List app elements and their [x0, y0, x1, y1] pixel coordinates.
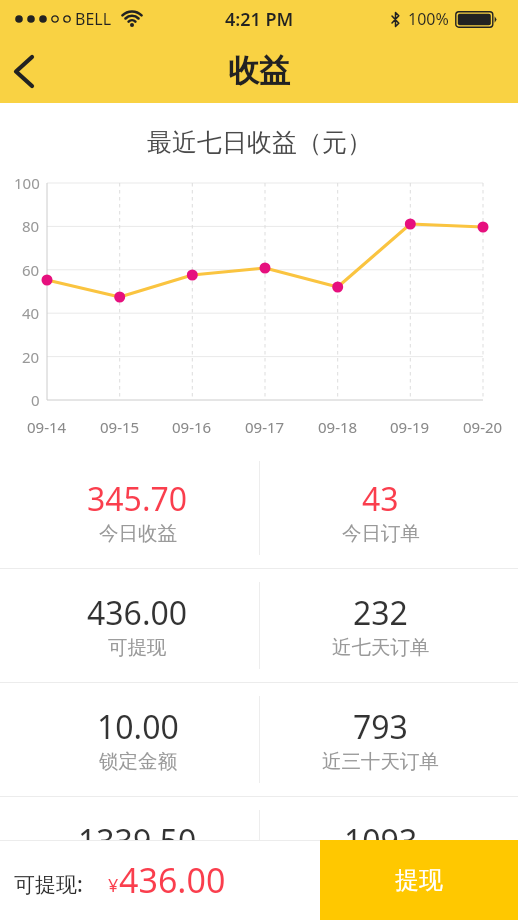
- button[interactable]: 793: [259, 683, 502, 796]
- staticText: 0: [31, 390, 40, 410]
- staticText: 09-15: [100, 417, 140, 437]
- staticText: 436.00: [87, 591, 188, 635]
- staticText: 09-20: [463, 417, 503, 437]
- staticText: BELL: [75, 8, 112, 30]
- staticText: 09-18: [318, 417, 358, 437]
- staticText: 345.70: [87, 477, 188, 521]
- staticText: 09-17: [245, 417, 285, 437]
- button[interactable]: 43: [259, 454, 502, 568]
- button[interactable]: 436.00: [16, 569, 259, 682]
- staticText: 可提现: [108, 635, 167, 660]
- staticText: 100%: [408, 8, 449, 30]
- staticText: 近七天收益: [89, 863, 187, 888]
- staticText: 近七天订单: [332, 635, 430, 660]
- staticText: 今日订单: [342, 521, 420, 546]
- button[interactable]: 1093: [259, 797, 502, 910]
- button[interactable]: 345.70: [16, 454, 259, 568]
- staticText: 收益: [228, 51, 290, 90]
- staticText: 10.00: [97, 705, 179, 749]
- button[interactable]: 1339.50: [16, 797, 259, 910]
- staticText: 1339.50: [78, 819, 197, 863]
- staticText: 提现: [395, 865, 443, 895]
- staticText: 436.00: [119, 857, 226, 903]
- staticText: 60: [22, 260, 40, 280]
- staticText: 09-16: [172, 417, 212, 437]
- staticText: 近三十天收益: [322, 863, 439, 888]
- staticText: ¥: [108, 873, 119, 898]
- staticText: 近三十天订单: [322, 749, 439, 774]
- button[interactable]: 10.00: [16, 683, 259, 796]
- staticText: 20: [22, 347, 40, 367]
- staticText: 今日收益: [99, 521, 177, 546]
- button[interactable]: 提现: [320, 840, 518, 920]
- button[interactable]: 232: [259, 569, 502, 682]
- staticText: 4:21 PM: [225, 7, 294, 32]
- staticText: 09-14: [27, 417, 67, 437]
- staticText: 锁定金额: [99, 749, 177, 774]
- staticText: 43: [362, 477, 399, 521]
- staticText: 1093: [344, 819, 418, 863]
- staticText: 40: [22, 303, 40, 323]
- staticText: 100: [14, 173, 40, 193]
- staticText: 80: [22, 216, 40, 236]
- staticText: 最近七日收益（元）: [147, 127, 372, 158]
- staticText: 232: [353, 591, 408, 635]
- staticText: 09-19: [390, 417, 430, 437]
- staticText: 793: [353, 705, 408, 749]
- staticText: 可提现:: [14, 870, 83, 899]
- button[interactable]: [0, 47, 48, 95]
